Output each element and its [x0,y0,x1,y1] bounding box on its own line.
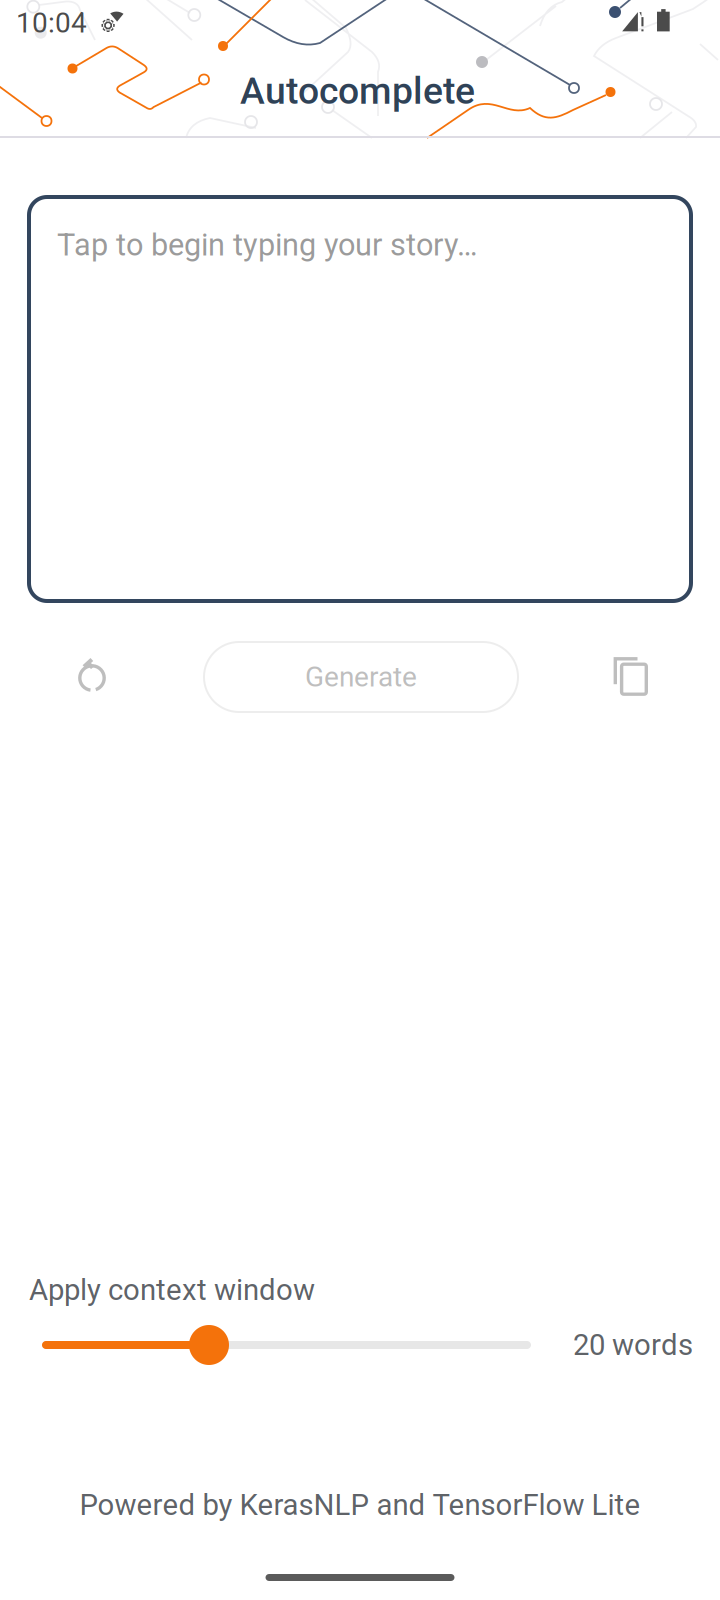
staticText: 10:04 [16,7,87,39]
staticText: Apply context window [29,1273,315,1307]
button[interactable]: Generate [204,642,518,712]
staticText: Autocomplete [240,69,475,113]
staticText: Powered by KerasNLP and TensorFlow Lite [79,1488,640,1522]
staticText: Generate [305,661,417,693]
staticText: Tap to begin typing your story… [57,227,478,263]
staticText: 20 words [573,1328,693,1362]
button[interactable]: Copy [584,642,676,712]
button[interactable]: Reset [46,642,138,712]
